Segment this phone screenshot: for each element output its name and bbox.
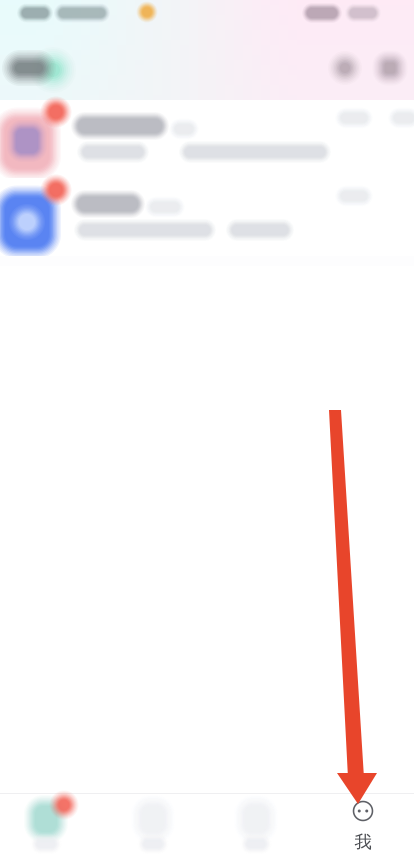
button[interactable] — [0, 100, 414, 178]
button[interactable]: Contacts — [104, 794, 207, 859]
button[interactable]: Search — [323, 46, 367, 90]
button[interactable]: Chats — [1, 794, 104, 859]
button[interactable]: Discover — [207, 794, 310, 859]
button[interactable] — [0, 178, 414, 256]
staticText: 我 — [354, 831, 371, 853]
button[interactable]: Me — [310, 794, 413, 859]
button[interactable]: Add — [368, 46, 412, 90]
